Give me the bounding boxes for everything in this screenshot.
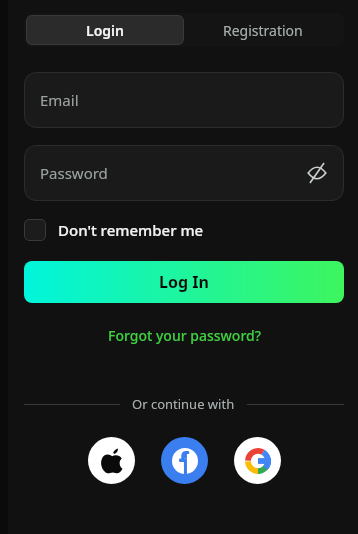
staticText: Email <box>40 90 79 110</box>
button[interactable]: Sign in with Facebook <box>161 437 208 484</box>
button[interactable]: Email <box>24 72 344 128</box>
button[interactable]: Sign in with Google <box>234 437 281 484</box>
button[interactable]: Registration <box>184 15 342 45</box>
button[interactable]: Login <box>26 15 184 45</box>
button[interactable]: Sign in with Apple <box>88 437 135 484</box>
staticText: Forgot your password? <box>108 326 261 345</box>
staticText: Or continue with <box>132 395 235 413</box>
button[interactable]: Log In <box>24 261 344 303</box>
staticText: Registration <box>223 21 303 40</box>
button[interactable]: Forgot your password? <box>102 324 267 347</box>
staticText: Login <box>86 21 124 40</box>
staticText: Password <box>40 163 108 183</box>
staticText: Log In <box>159 271 209 293</box>
staticText: Don't remember me <box>58 220 204 240</box>
button[interactable]: Don't remember me <box>24 217 204 243</box>
button[interactable]: Show password <box>304 160 330 186</box>
button[interactable]: Password <box>24 145 344 201</box>
